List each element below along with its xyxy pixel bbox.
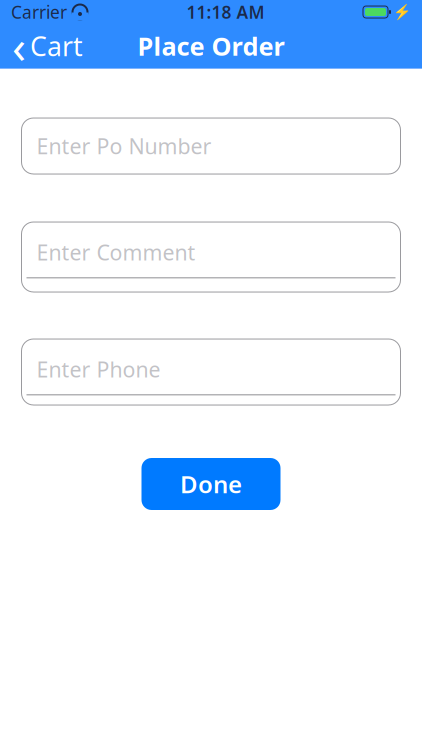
staticText: ⚡: [393, 4, 411, 20]
button[interactable]: Done: [141, 458, 280, 510]
staticText: Enter Comment: [36, 238, 195, 266]
staticText: Enter Phone: [36, 355, 160, 383]
staticText: Carrier: [11, 0, 67, 23]
staticText: ‹: [12, 16, 26, 76]
staticText: 11:18 AM: [186, 0, 264, 23]
staticText: Enter Po Number: [36, 132, 211, 160]
staticText: Done: [180, 468, 242, 500]
staticText: Place Order: [137, 29, 284, 63]
staticText: Cart: [30, 28, 83, 64]
button[interactable]: ‹: [0, 24, 95, 68]
